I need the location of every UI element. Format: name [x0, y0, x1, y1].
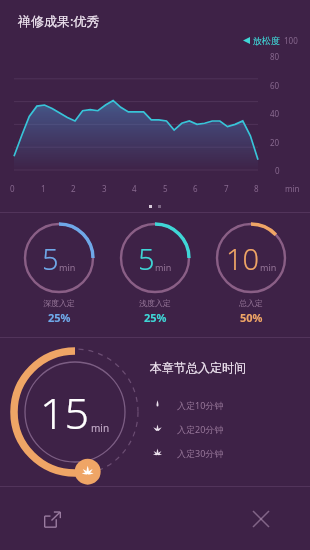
- staticText: 4: [132, 183, 137, 194]
- staticText: 50%: [240, 310, 263, 325]
- staticText: 0: [10, 183, 15, 194]
- staticText: 入定20分钟: [177, 423, 224, 435]
- staticText: 6: [193, 183, 198, 194]
- button[interactable]: Close: [246, 504, 276, 534]
- staticText: 总入定: [239, 298, 263, 308]
- staticText: min: [91, 421, 110, 435]
- staticText: 60: [270, 80, 280, 91]
- staticText: 100: [284, 35, 298, 46]
- staticText: 入定30分钟: [177, 447, 224, 459]
- staticText: 7: [224, 183, 229, 194]
- button[interactable]: 5: [118, 221, 192, 325]
- staticText: 放松度: [253, 35, 280, 46]
- staticText: 2: [71, 183, 76, 194]
- staticText: min: [59, 261, 76, 273]
- staticText: 8: [254, 183, 259, 194]
- staticText: 80: [270, 51, 280, 62]
- button[interactable]: 15: [9, 346, 141, 478]
- staticText: 20: [270, 137, 280, 148]
- staticText: 深度入定: [43, 298, 75, 308]
- staticText: 40: [270, 108, 280, 119]
- staticText: 10: [226, 239, 260, 278]
- staticText: 1: [41, 183, 46, 194]
- staticText: 入定10分钟: [177, 399, 224, 411]
- button[interactable]: 10: [214, 221, 288, 325]
- staticText: 5: [138, 239, 155, 278]
- staticText: 5: [42, 239, 59, 278]
- staticText: min: [155, 261, 172, 273]
- staticText: 3: [102, 183, 107, 194]
- staticText: min: [285, 183, 300, 194]
- staticText: 25%: [48, 310, 71, 325]
- staticText: min: [260, 261, 277, 273]
- button[interactable]: 5: [22, 221, 96, 325]
- staticText: 25%: [144, 310, 167, 325]
- staticText: 5: [163, 183, 168, 194]
- staticText: 0: [275, 165, 280, 176]
- staticText: 本章节总入定时间: [150, 360, 246, 375]
- staticText: 15: [40, 383, 90, 442]
- staticText: 禅修成果:优秀: [18, 12, 100, 30]
- staticText: 浅度入定: [139, 298, 171, 308]
- button[interactable]: Share: [36, 503, 68, 535]
